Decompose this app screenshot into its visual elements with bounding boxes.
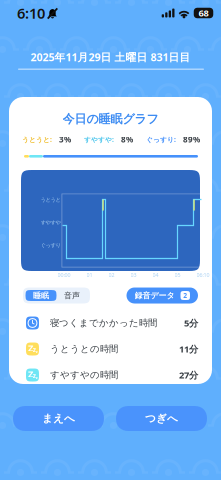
staticText: うとうとの時間: [50, 343, 118, 355]
staticText: 5分: [184, 317, 198, 329]
button[interactable]: Z: [9, 336, 212, 362]
staticText: つぎへ: [145, 412, 178, 425]
staticText: うとうと: [40, 196, 60, 203]
button[interactable]: つぎへ: [116, 406, 207, 431]
staticText: 録音データ: [134, 291, 174, 300]
staticText: 2025年11月29日 土曜日 831日目: [30, 50, 190, 64]
staticText: 89%: [183, 134, 200, 145]
staticText: 01: [86, 271, 92, 279]
button[interactable]: 睡眠: [25, 290, 56, 301]
staticText: 音声: [64, 291, 80, 300]
button[interactable]: 音声: [56, 290, 87, 301]
staticText: 68: [198, 7, 208, 19]
staticText: z: [36, 375, 38, 380]
staticText: すやすや:: [84, 135, 114, 144]
staticText: すやすやの時間: [50, 369, 118, 381]
staticText: ぐっすり: [40, 242, 60, 248]
staticText: 03: [130, 271, 136, 279]
staticText: Z: [28, 342, 33, 354]
staticText: まえへ: [42, 412, 75, 425]
staticText: 00:00: [57, 271, 70, 279]
staticText: 寝つくまでかかった時間: [50, 317, 157, 329]
staticText: 睡眠: [33, 291, 49, 300]
staticText: うとうと:: [22, 135, 52, 144]
staticText: 3%: [59, 134, 71, 145]
staticText: すやすや: [40, 219, 60, 226]
button[interactable]: まえへ: [13, 406, 104, 431]
staticText: ぐっすり:: [146, 135, 176, 144]
staticText: z: [33, 371, 36, 380]
staticText: 11分: [179, 343, 198, 355]
staticText: z: [36, 349, 38, 354]
staticText: 今日の睡眠グラフ: [62, 112, 158, 126]
staticText: 8%: [121, 134, 133, 145]
staticText: Z: [28, 368, 33, 380]
staticText: 2: [183, 291, 187, 300]
button[interactable]: 録音データ: [126, 287, 198, 303]
staticText: 27分: [179, 369, 198, 381]
button[interactable]: Z: [9, 362, 212, 388]
staticText: z: [33, 345, 36, 354]
staticText: 04: [152, 271, 158, 279]
staticText: 6:10: [17, 3, 45, 23]
staticText: 06:10: [196, 271, 209, 279]
staticText: 05: [174, 271, 180, 279]
button[interactable]: 寝つくまでかかった時間: [9, 310, 212, 336]
staticText: 02: [108, 271, 114, 279]
